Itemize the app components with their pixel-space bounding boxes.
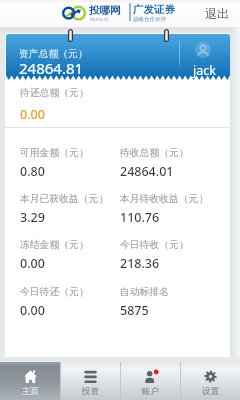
staticText: jack	[193, 62, 216, 79]
button[interactable]: 退出	[198, 0, 236, 27]
button[interactable]: Home	[0, 362, 60, 400]
staticText: 5875	[120, 302, 149, 319]
staticText: 本月待收收益（元）	[120, 193, 209, 205]
staticText: 0.00	[20, 302, 45, 319]
staticText: 今日待还（元）	[20, 286, 89, 298]
staticText: 218.36	[120, 255, 160, 272]
button[interactable]: Settings	[180, 362, 240, 400]
staticText: 设置	[202, 386, 219, 397]
staticText: 账户	[142, 386, 159, 397]
staticText: 投资	[82, 386, 99, 397]
staticText: 战略合作伙伴	[133, 16, 166, 23]
button[interactable]: Account	[120, 362, 180, 400]
button[interactable]: Invest	[60, 362, 120, 400]
staticText: 0.80	[20, 163, 45, 180]
staticText: 待还总额（元）	[20, 87, 89, 99]
staticText: 0.00	[20, 255, 45, 272]
staticText: 主页	[22, 386, 39, 397]
staticText: 可用金额（元）	[20, 147, 89, 159]
staticText: 0.00	[20, 106, 45, 123]
staticText: 广发证券	[133, 3, 175, 16]
staticText: 冻结金额（元）	[20, 239, 89, 251]
staticText: 110.76	[120, 209, 160, 226]
staticText: 本月已获收益（元）	[20, 193, 109, 205]
staticText: touna.cn	[90, 16, 109, 22]
staticText: 退出	[205, 6, 229, 21]
staticText: 资产总额（元）	[19, 48, 88, 60]
staticText: 今日待收（元）	[120, 239, 189, 251]
staticText: 3.29	[20, 209, 45, 226]
staticText: 24864.01	[120, 163, 174, 180]
staticText: 自动标排名	[120, 286, 169, 298]
staticText: 24864.81	[19, 58, 84, 78]
staticText: 待收总额（元）	[120, 147, 189, 159]
staticText: 投哪网	[89, 4, 121, 17]
